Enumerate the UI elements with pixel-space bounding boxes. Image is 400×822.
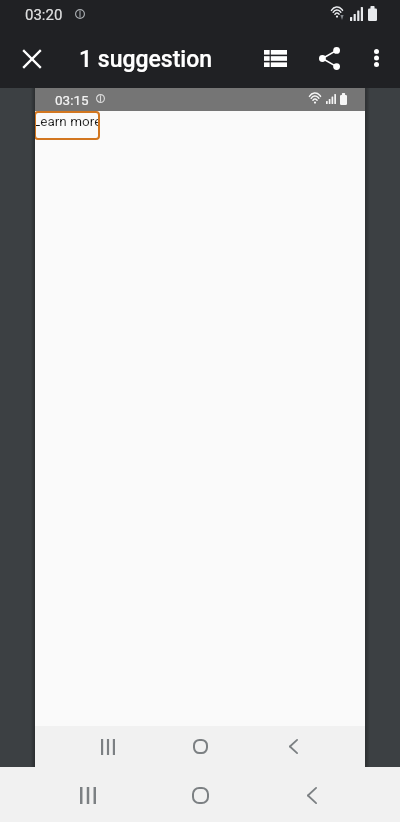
button[interactable]: More options [354,33,398,83]
staticText: 1 suggestion [79,46,213,73]
button[interactable]: Back [307,787,317,804]
button[interactable]: List view [252,33,298,83]
staticText: Learn more [35,113,99,129]
staticText: 03:20 [25,6,63,24]
staticText: 03:15 [55,92,89,108]
button[interactable]: Recents [80,787,96,804]
button[interactable]: Back [289,739,298,755]
button[interactable]: Close [1,34,63,84]
button[interactable]: Learn more [35,111,100,140]
button[interactable]: Recents [101,739,115,755]
button[interactable]: Home [192,787,209,804]
button[interactable]: Home [193,739,208,755]
button[interactable]: Share [306,33,352,83]
